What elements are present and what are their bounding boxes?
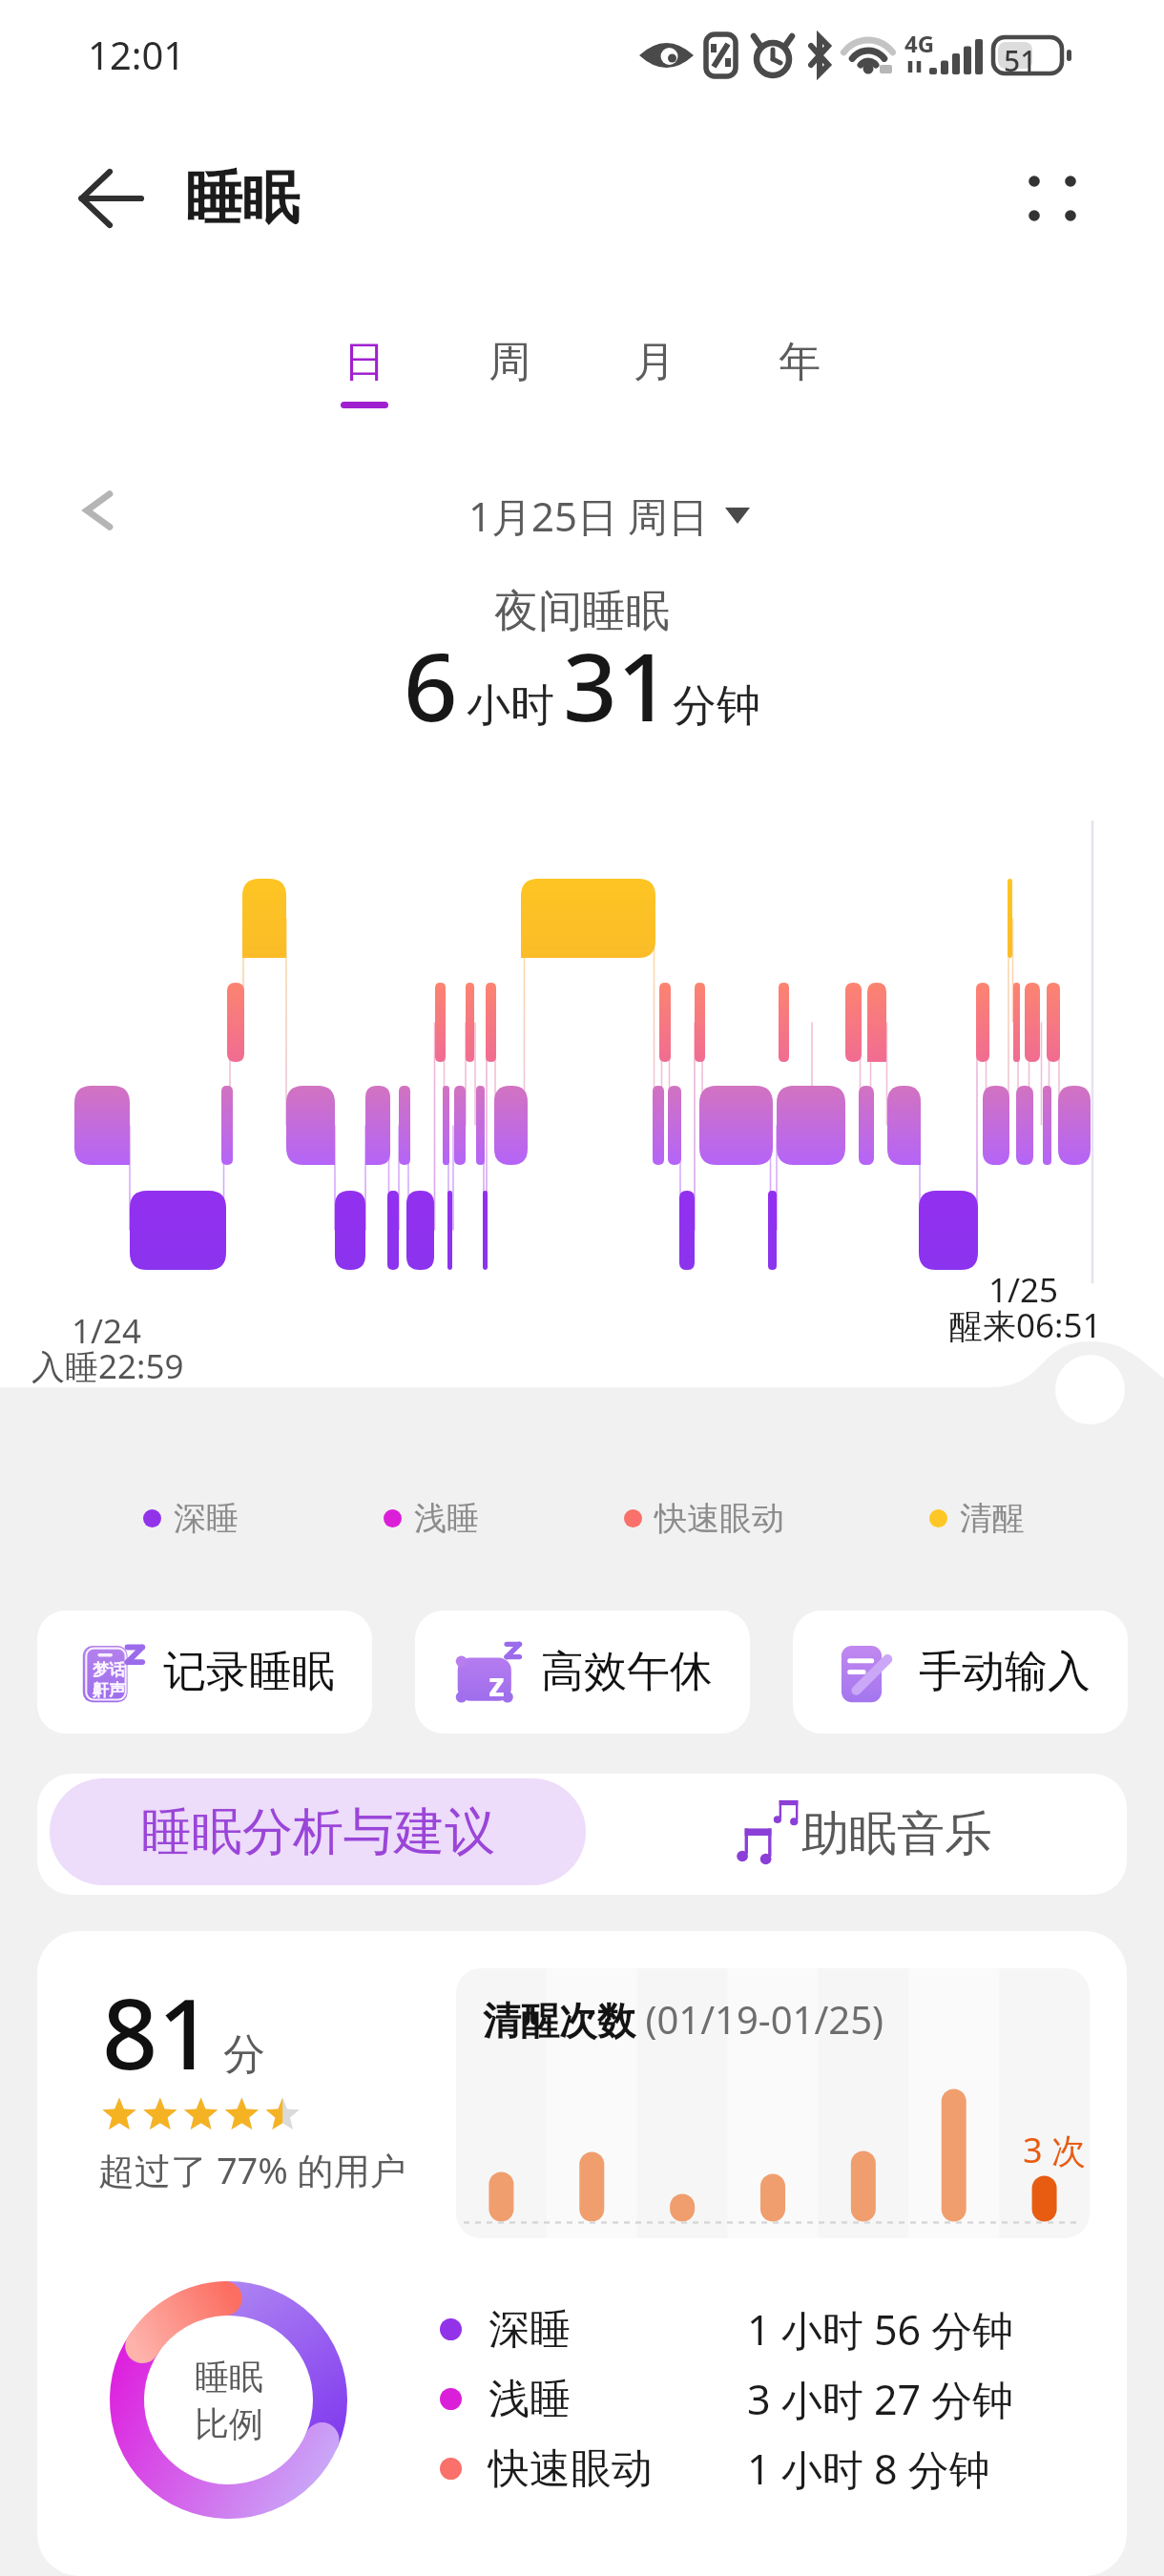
staticText: 深睡 xyxy=(174,1498,239,1539)
staticText: 小时 xyxy=(467,678,554,734)
button[interactable]: 深睡 xyxy=(440,2295,1050,2364)
staticText: 1/25 xyxy=(988,1267,1059,1313)
staticText: 1 小时 8 分钟 xyxy=(747,2441,990,2497)
staticText: 睡眠 xyxy=(195,2356,263,2399)
button[interactable]: 1月25日 周日 xyxy=(468,488,750,543)
button[interactable]: Back xyxy=(67,157,158,241)
staticText: z xyxy=(488,1662,505,1706)
staticText: 81 xyxy=(102,1965,214,2098)
staticText: 31 xyxy=(563,620,672,749)
staticText: 睡眠分析与建议 xyxy=(141,1800,495,1864)
button[interactable]: 梦话 xyxy=(37,1610,372,1734)
staticText: 月 xyxy=(634,336,676,388)
staticText: 1月25日 周日 xyxy=(468,488,708,543)
staticText: 比例 xyxy=(195,2402,263,2445)
staticText: 3 次 xyxy=(1023,2127,1086,2173)
staticText: 日 xyxy=(343,336,385,388)
staticText: 快速眼动 xyxy=(655,1498,784,1539)
staticText: 快速眼动 xyxy=(488,2443,653,2495)
button[interactable]: 浅睡 xyxy=(440,2364,1050,2434)
staticText: 1/24 xyxy=(72,1308,142,1354)
staticText: 6 xyxy=(404,620,458,749)
staticText: 51 xyxy=(1004,41,1037,80)
staticText: 清醒 xyxy=(960,1498,1025,1539)
button[interactable]: More options xyxy=(1015,162,1090,235)
staticText: 1 小时 56 分钟 xyxy=(747,2301,1014,2358)
staticText: 入睡22:59 xyxy=(31,1343,184,1389)
staticText: 分 xyxy=(223,2028,265,2081)
staticText: 超过了 77% 的用户 xyxy=(98,2145,406,2194)
button[interactable]: 快速眼动 xyxy=(440,2434,1050,2503)
staticText: 助眠音乐 xyxy=(801,1804,992,1864)
staticText: 分钟 xyxy=(673,678,760,734)
staticText: 高效午休 xyxy=(541,1645,713,1699)
staticText: 12:01 xyxy=(88,29,186,80)
button[interactable]: 睡眠分析与建议 xyxy=(50,1778,586,1885)
button[interactable]: 日 xyxy=(292,336,437,408)
button[interactable]: 月 xyxy=(582,336,727,408)
staticText: 记录睡眠 xyxy=(163,1645,335,1699)
button[interactable]: 助眠音乐 xyxy=(586,1774,1127,1895)
button[interactable]: z xyxy=(415,1610,750,1734)
staticText: 浅睡 xyxy=(414,1498,479,1539)
staticText: (01/19-01/25) xyxy=(635,1993,884,2045)
staticText: 鼾声 xyxy=(93,1680,125,1700)
staticText: 3 小时 27 分钟 xyxy=(747,2371,1014,2427)
staticText: 4G xyxy=(904,28,935,59)
button[interactable]: Add sleep record xyxy=(1055,1355,1125,1424)
staticText: 手动输入 xyxy=(919,1645,1091,1699)
button[interactable]: 手动输入 xyxy=(793,1610,1128,1734)
staticText: 醒来06:51 xyxy=(949,1302,1102,1348)
staticText: 梦话 xyxy=(93,1660,125,1680)
button[interactable]: 周 xyxy=(437,336,582,408)
staticText: 清醒次数 xyxy=(483,1997,635,2045)
button[interactable]: Previous day xyxy=(73,485,124,536)
staticText: 年 xyxy=(779,336,821,388)
staticText: 深睡 xyxy=(488,2304,571,2356)
staticText: 夜间睡眠 xyxy=(494,584,670,639)
staticText: 周 xyxy=(488,336,530,388)
button[interactable]: 年 xyxy=(727,336,872,408)
staticText: 睡眠 xyxy=(185,162,300,235)
staticText: 浅睡 xyxy=(488,2374,571,2425)
